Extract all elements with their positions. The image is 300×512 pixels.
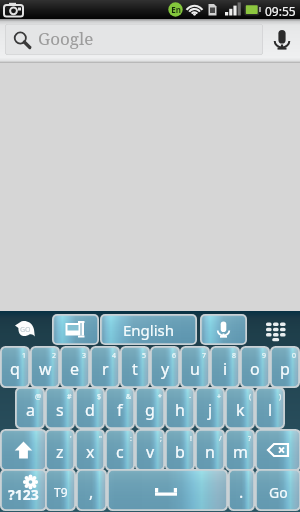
staticText: : bbox=[130, 434, 132, 444]
staticText: 6 bbox=[172, 351, 177, 361]
staticText: Go bbox=[269, 483, 288, 502]
button[interactable]: t bbox=[120, 346, 150, 388]
staticText: v bbox=[146, 441, 155, 463]
staticText: 5 bbox=[142, 351, 147, 361]
staticText: w bbox=[39, 358, 52, 380]
button[interactable]: o bbox=[240, 346, 270, 388]
staticText: " bbox=[99, 434, 102, 444]
staticText: $ bbox=[97, 392, 102, 402]
staticText: En bbox=[169, 4, 183, 15]
staticText: 7 bbox=[202, 351, 207, 361]
staticText: ! bbox=[190, 434, 192, 444]
staticText: 1 bbox=[22, 351, 27, 361]
button[interactable]: r bbox=[90, 346, 120, 388]
staticText: p bbox=[280, 358, 290, 380]
staticText: b bbox=[175, 441, 185, 463]
button[interactable]: Voice search bbox=[263, 19, 300, 62]
button[interactable]: Shift bbox=[0, 429, 47, 471]
staticText: y bbox=[161, 358, 170, 380]
staticText: h bbox=[175, 399, 185, 421]
staticText: u bbox=[190, 358, 200, 380]
button[interactable]: d bbox=[75, 387, 105, 429]
staticText: 0 bbox=[292, 351, 297, 361]
staticText: English bbox=[123, 320, 175, 340]
button[interactable]: n bbox=[195, 429, 225, 471]
button[interactable]: Switch keyboard bbox=[52, 314, 99, 345]
staticText: & bbox=[126, 392, 132, 402]
button[interactable]: z bbox=[45, 429, 75, 471]
staticText: 3 bbox=[82, 351, 87, 361]
button[interactable]: q bbox=[0, 346, 30, 388]
staticText: r bbox=[102, 358, 109, 380]
button[interactable]: c bbox=[105, 429, 135, 471]
button[interactable]: Hide keyboard bbox=[258, 315, 294, 344]
button[interactable]: b bbox=[165, 429, 195, 471]
staticText: z bbox=[56, 441, 64, 463]
staticText: 4 bbox=[112, 351, 117, 361]
staticText: ; bbox=[160, 434, 162, 444]
staticText: o bbox=[250, 358, 260, 380]
staticText: 09:55 bbox=[265, 3, 296, 19]
staticText: 8 bbox=[232, 351, 237, 361]
staticText: s bbox=[56, 399, 64, 421]
staticText: , bbox=[89, 481, 94, 503]
button[interactable]: GO Keyboard menu bbox=[0, 311, 48, 344]
staticText: GO bbox=[20, 325, 31, 335]
button[interactable]: English bbox=[100, 314, 197, 345]
staticText: q bbox=[10, 358, 20, 380]
staticText: / bbox=[219, 434, 222, 444]
button[interactable]: j bbox=[195, 387, 225, 429]
button[interactable]: x bbox=[75, 429, 105, 471]
button[interactable]: e bbox=[60, 346, 90, 388]
button[interactable]: l bbox=[255, 387, 285, 429]
staticText: e bbox=[70, 358, 80, 380]
staticText: g bbox=[145, 399, 155, 421]
staticText: ? bbox=[248, 434, 252, 444]
staticText: a bbox=[26, 399, 35, 421]
button[interactable]: g bbox=[135, 387, 165, 429]
staticText: d bbox=[85, 399, 95, 421]
button[interactable]: . bbox=[228, 469, 255, 511]
staticText: k bbox=[236, 399, 245, 421]
staticText: m bbox=[233, 441, 248, 463]
staticText: t bbox=[132, 358, 138, 380]
staticText: ' bbox=[70, 434, 72, 444]
button[interactable]: T9 bbox=[45, 469, 76, 511]
button[interactable]: f bbox=[105, 387, 135, 429]
button[interactable]: m bbox=[225, 429, 255, 471]
button[interactable]: a bbox=[15, 387, 45, 429]
button[interactable]: Space bbox=[107, 469, 228, 511]
staticText: * bbox=[158, 392, 162, 402]
button[interactable]: v bbox=[135, 429, 165, 471]
button[interactable]: u bbox=[180, 346, 210, 388]
button[interactable]: w bbox=[30, 346, 60, 388]
button[interactable]: i bbox=[210, 346, 240, 388]
staticText: # bbox=[67, 392, 72, 402]
staticText: Google bbox=[38, 27, 94, 50]
button[interactable]: Backspace bbox=[255, 429, 300, 471]
button[interactable]: Symbols and settings bbox=[0, 469, 47, 511]
staticText: + bbox=[217, 392, 222, 402]
staticText: i bbox=[223, 358, 228, 380]
staticText: c bbox=[116, 441, 124, 463]
staticText: ( bbox=[249, 392, 252, 402]
button[interactable]: y bbox=[150, 346, 180, 388]
staticText: j bbox=[208, 399, 213, 421]
button[interactable]: Google bbox=[5, 24, 263, 55]
button[interactable]: p bbox=[270, 346, 300, 388]
button[interactable]: s bbox=[45, 387, 75, 429]
button[interactable]: h bbox=[165, 387, 195, 429]
staticText: ?123 bbox=[8, 485, 39, 504]
staticText: - bbox=[189, 392, 192, 402]
button[interactable]: , bbox=[76, 469, 107, 511]
staticText: x bbox=[86, 441, 95, 463]
staticText: 9 bbox=[262, 351, 267, 361]
button[interactable]: Go bbox=[255, 469, 300, 511]
button[interactable]: Voice input bbox=[200, 314, 247, 345]
staticText: n bbox=[205, 441, 215, 463]
staticText: . bbox=[239, 481, 244, 503]
button[interactable]: k bbox=[225, 387, 255, 429]
staticText: ) bbox=[279, 392, 282, 402]
staticText: f bbox=[117, 399, 123, 421]
staticText: @ bbox=[35, 392, 42, 402]
